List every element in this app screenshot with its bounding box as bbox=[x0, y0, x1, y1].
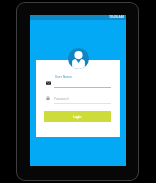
staticText: Password bbox=[54, 97, 69, 101]
button[interactable]: Profile avatar bbox=[68, 48, 89, 69]
other: Password bbox=[46, 96, 50, 100]
other: Email bbox=[46, 81, 51, 85]
button[interactable]: Login bbox=[44, 111, 111, 122]
staticText: 10:26 AM bbox=[109, 14, 124, 19]
staticText: Login bbox=[73, 115, 82, 119]
staticText: User Name bbox=[55, 75, 72, 79]
